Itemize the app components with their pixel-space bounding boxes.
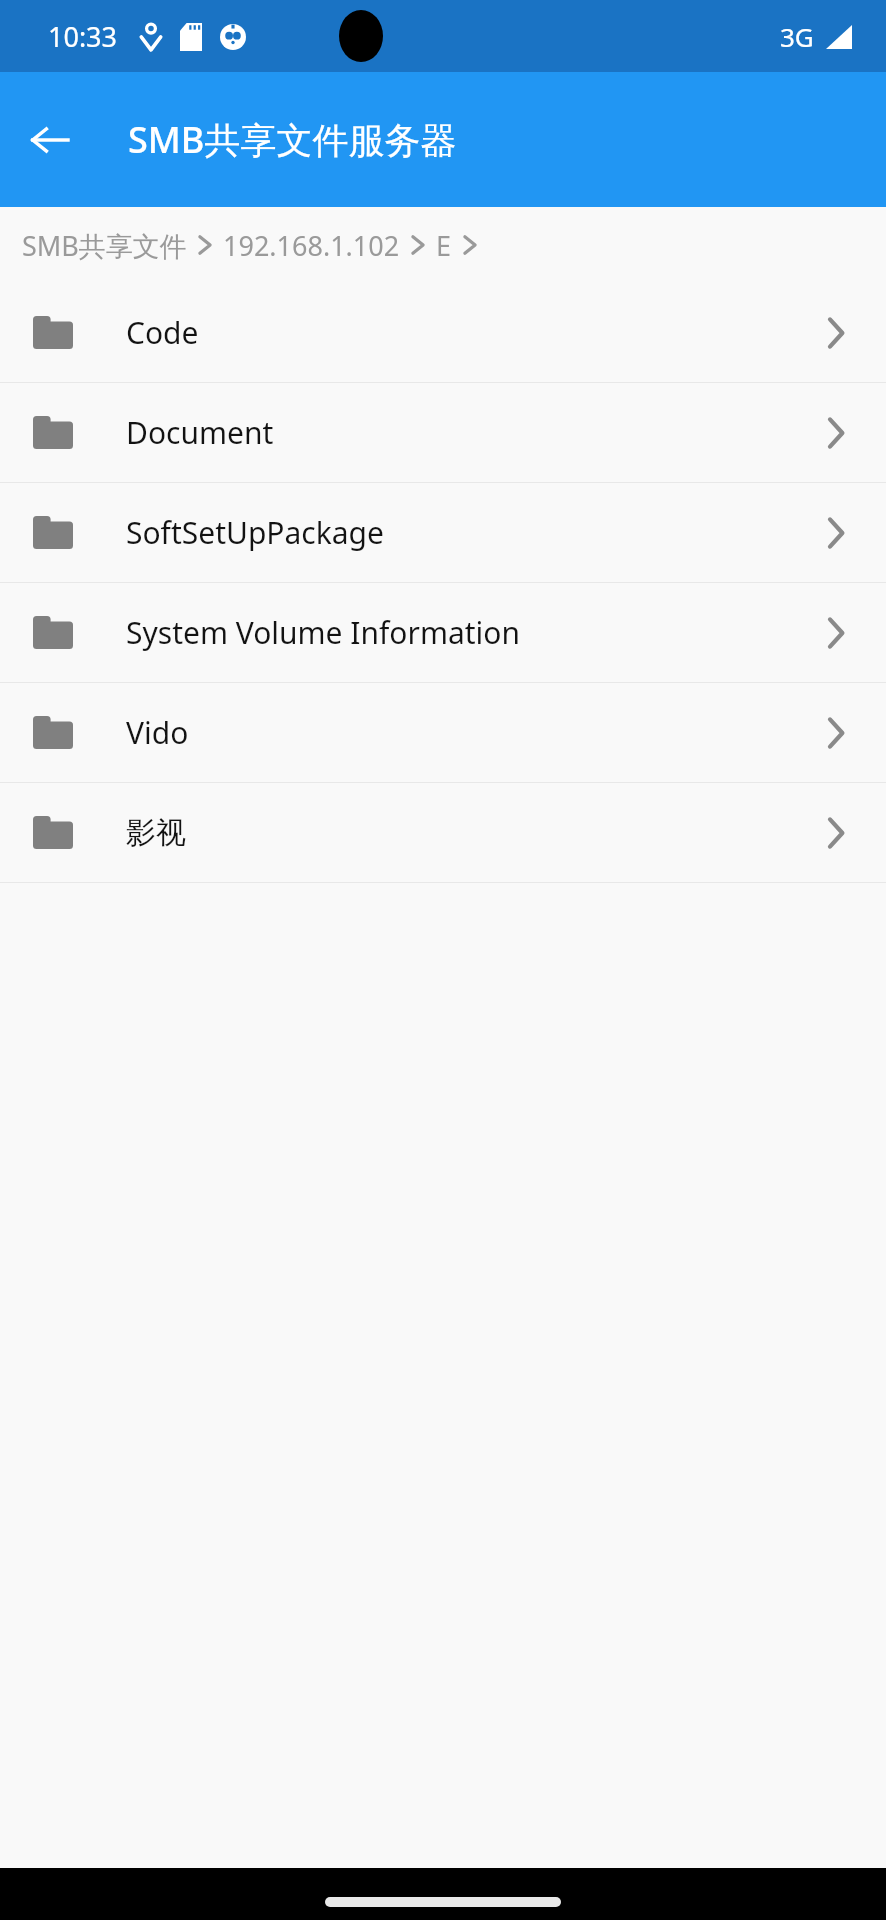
button[interactable]: 192.168.1.102 (223, 227, 400, 264)
staticText: Vido (126, 712, 826, 753)
staticText: 3G (780, 19, 814, 54)
staticText: Code (126, 312, 826, 353)
staticText: Document (126, 412, 826, 453)
staticText: 影视 (126, 814, 826, 852)
button[interactable]: System Volume Information (0, 583, 886, 682)
button[interactable]: Back (14, 104, 86, 176)
staticText: E (436, 227, 452, 264)
staticText: SMB共享文件服务器 (128, 115, 457, 164)
staticText: 192.168.1.102 (223, 227, 400, 264)
button[interactable]: E (436, 227, 452, 264)
staticText: SoftSetUpPackage (126, 512, 826, 553)
button[interactable]: Document (0, 383, 886, 482)
button[interactable]: SoftSetUpPackage (0, 483, 886, 582)
staticText: System Volume Information (126, 612, 826, 653)
button[interactable]: Code (0, 283, 886, 382)
button[interactable]: Vido (0, 683, 886, 782)
staticText: 10:33 (48, 18, 118, 55)
button[interactable]: 影视 (0, 783, 886, 882)
staticText: SMB共享文件 (22, 227, 187, 264)
button[interactable]: SMB共享文件 (22, 227, 187, 264)
